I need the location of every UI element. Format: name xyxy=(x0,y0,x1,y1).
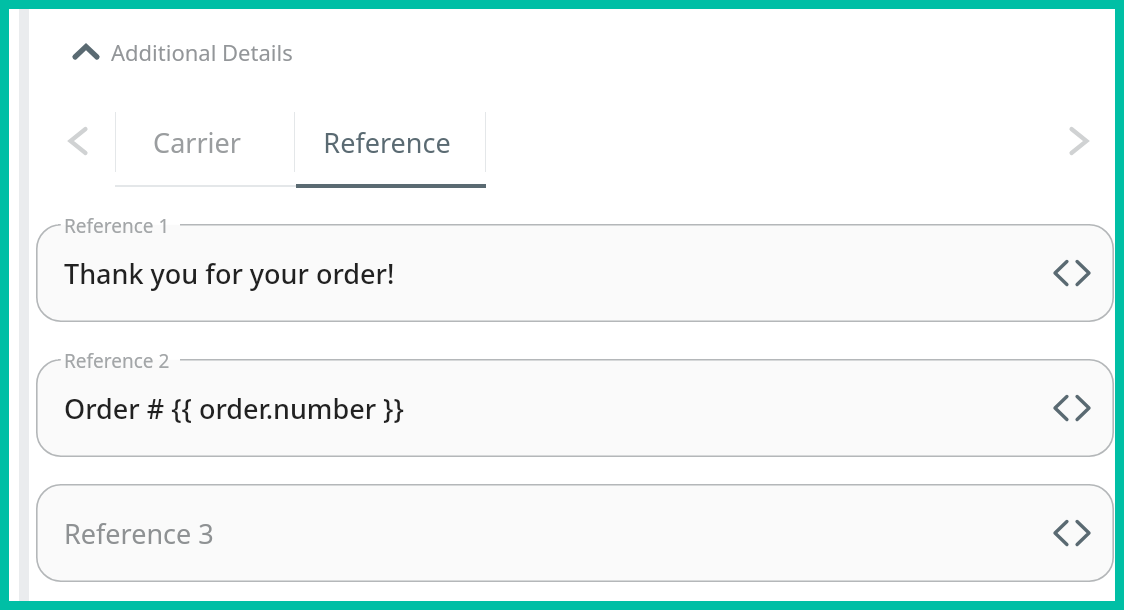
staticText: Order # {{ order.number }} xyxy=(64,390,404,427)
staticText: Carrier xyxy=(153,124,241,161)
button[interactable]: Carrier xyxy=(107,105,287,180)
staticText: Reference 1 xyxy=(64,213,170,239)
staticText: Reference 2 xyxy=(64,348,170,374)
other: Collapse Additional Details xyxy=(69,35,103,69)
button[interactable]: Reference 3 xyxy=(36,484,1114,582)
staticText: Additional Details xyxy=(111,37,293,67)
staticText: Reference xyxy=(323,124,451,161)
button[interactable]: Insert merge field xyxy=(1050,511,1094,555)
staticText: Reference 3 xyxy=(64,515,214,552)
staticText: Thank you for your order! xyxy=(64,255,395,292)
button[interactable]: Thank you for your order! xyxy=(36,224,1114,322)
button[interactable]: Previous tab xyxy=(54,117,102,165)
button[interactable]: Collapse Additional Details xyxy=(69,32,293,72)
button[interactable]: Insert merge field xyxy=(1050,251,1094,295)
button[interactable]: Insert merge field xyxy=(1050,386,1094,430)
button[interactable]: Order # {{ order.number }} xyxy=(36,359,1114,457)
button[interactable]: Reference xyxy=(296,105,477,180)
button[interactable]: Next tab xyxy=(1055,117,1103,165)
